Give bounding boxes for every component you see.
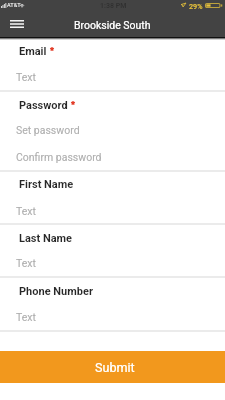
staticText: Brookside South	[74, 19, 151, 31]
staticText: Phone Number	[19, 285, 93, 298]
staticText: Text	[16, 71, 36, 83]
button[interactable]: Text	[0, 197, 225, 224]
staticText: Email	[19, 45, 47, 58]
button[interactable]: Text	[0, 249, 225, 276]
staticText: 29%	[189, 2, 203, 10]
staticText: First Name	[19, 178, 74, 191]
staticText: Password	[19, 99, 68, 112]
staticText: Text	[16, 205, 36, 217]
button[interactable]: Confirm password	[0, 143, 225, 170]
staticText: Set password	[16, 124, 80, 136]
button[interactable]: Set password	[0, 116, 225, 143]
staticText: Last Name	[19, 232, 73, 245]
button[interactable]: Open navigation menu	[3, 12, 31, 36]
staticText: Text	[16, 311, 36, 323]
staticText: Confirm password	[16, 151, 102, 163]
staticText: Submit	[95, 360, 135, 375]
staticText: Text	[16, 257, 36, 269]
button[interactable]: Text	[0, 63, 225, 90]
button[interactable]: Submit	[0, 351, 225, 383]
staticText: 1:38 PM	[100, 2, 127, 10]
staticText: AT&T	[7, 2, 21, 9]
button[interactable]: Text	[0, 303, 225, 330]
